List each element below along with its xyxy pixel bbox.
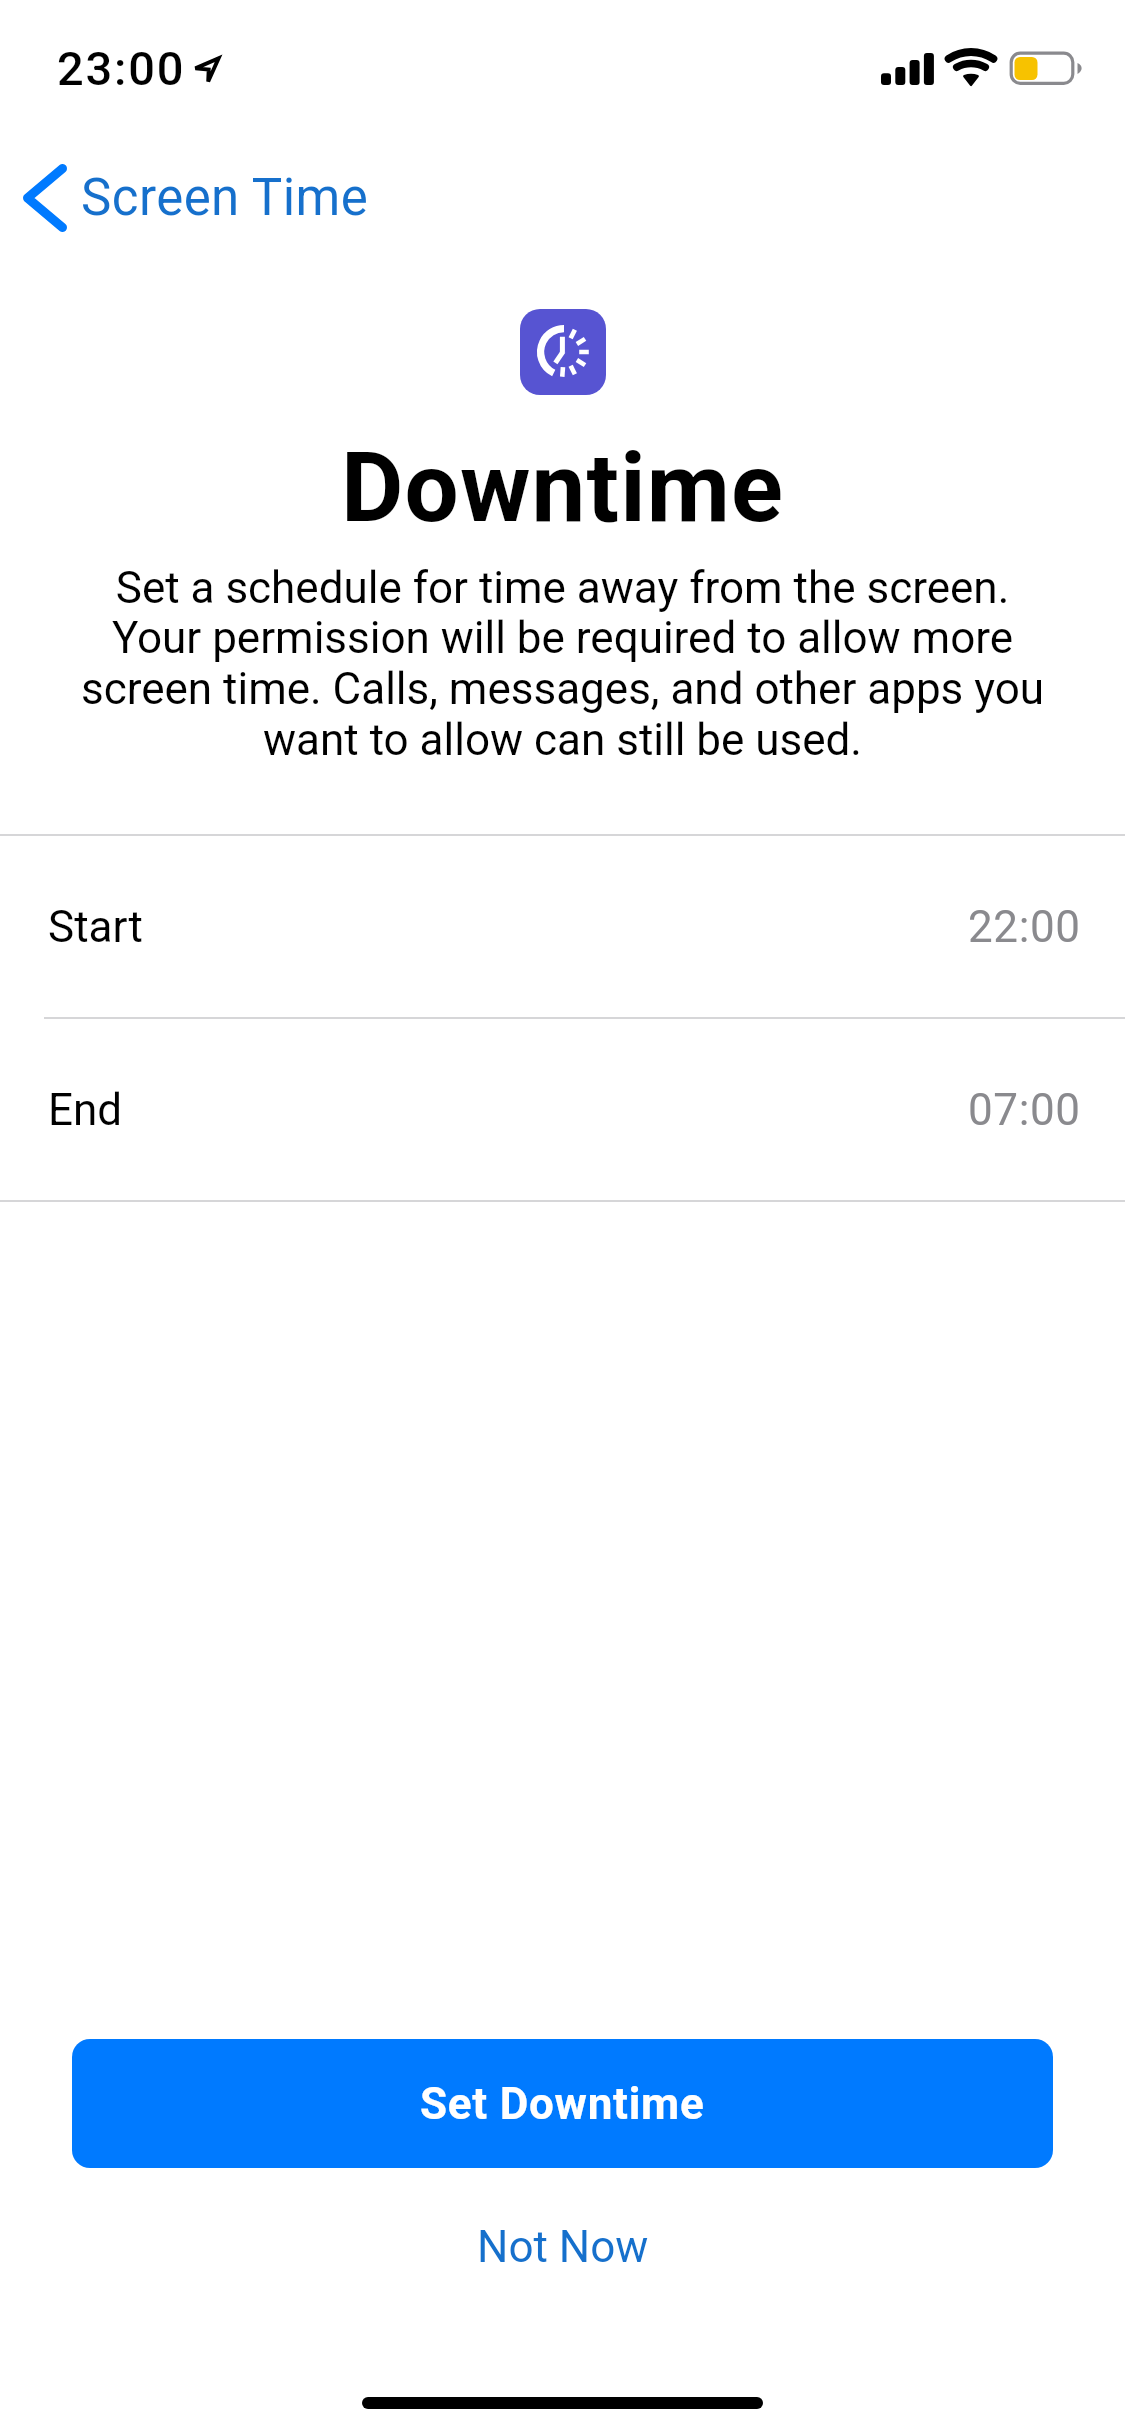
other: Cellular signal	[881, 52, 933, 85]
button[interactable]: End	[0, 1019, 1125, 1200]
staticText: Start	[48, 901, 143, 953]
staticText: Downtime	[0, 432, 1125, 545]
other: Battery	[1010, 52, 1083, 86]
staticText: 22:00	[968, 901, 1081, 953]
other: Wi-Fi	[944, 48, 998, 88]
staticText: Set a schedule for time away from the sc…	[75, 562, 1050, 766]
button[interactable]: Set Downtime	[72, 2039, 1053, 2168]
staticText: 23:00	[57, 41, 186, 96]
staticText: Set Downtime	[420, 2078, 705, 2130]
button[interactable]: Start	[0, 836, 1125, 1017]
staticText: Not Now	[477, 2221, 649, 2273]
button[interactable]: Not Now	[0, 2188, 1125, 2306]
other: Location services active	[191, 54, 223, 86]
button[interactable]: Screen Time	[0, 150, 393, 245]
staticText: End	[48, 1084, 123, 1136]
staticText: Screen Time	[81, 168, 369, 228]
staticText: 07:00	[968, 1084, 1081, 1136]
